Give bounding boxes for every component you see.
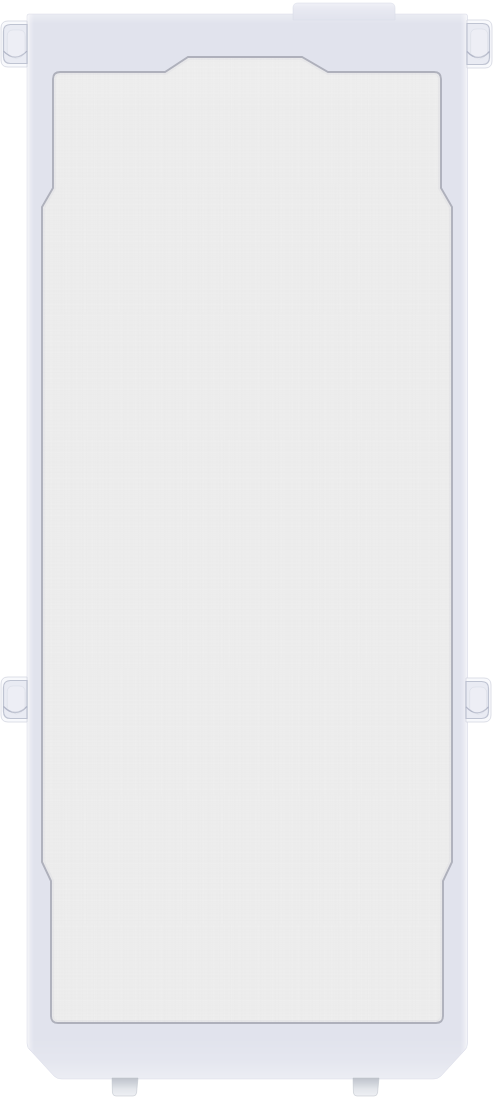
button[interactable]: Filter panel [0,0,494,1100]
